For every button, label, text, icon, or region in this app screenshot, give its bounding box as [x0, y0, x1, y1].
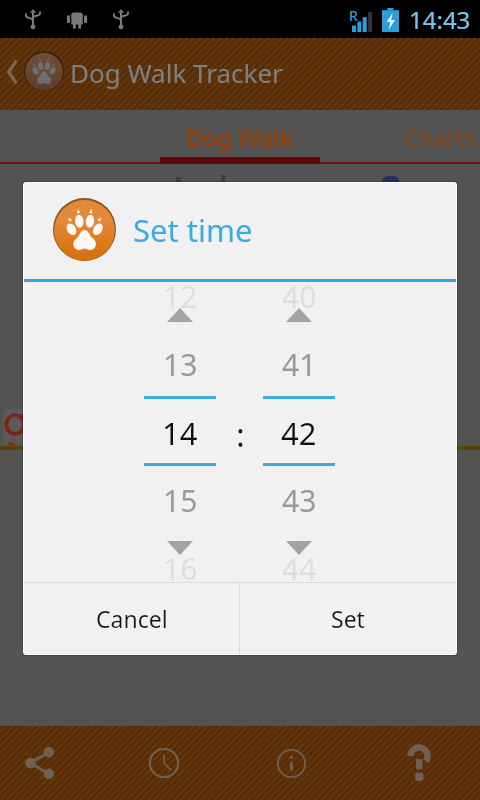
staticText: 16	[163, 548, 198, 589]
button[interactable]: Share	[10, 726, 70, 800]
button[interactable]: Set	[240, 583, 456, 654]
button[interactable]: History	[134, 726, 194, 800]
staticText: :	[236, 412, 245, 450]
staticText: 14:43	[409, 3, 471, 36]
staticText: Cancel	[96, 603, 168, 634]
staticText: 44	[282, 548, 317, 589]
staticText: Dog Walk	[186, 122, 295, 153]
staticText: 42	[281, 412, 317, 454]
staticText: 12	[163, 276, 198, 317]
button[interactable]: Charts	[360, 110, 480, 164]
staticText: R	[349, 6, 358, 25]
staticText: Dog Walk Tracker	[70, 55, 283, 90]
staticText: 14	[162, 412, 198, 454]
staticText: Set time	[133, 209, 253, 251]
staticText: Charts	[405, 122, 476, 153]
button[interactable]: Cancel	[24, 583, 239, 654]
staticText: 13	[163, 344, 198, 385]
staticText: 40	[282, 276, 317, 317]
button[interactable]: Info	[261, 726, 321, 800]
button[interactable]: Dog Walk	[160, 110, 320, 164]
staticText: 15	[163, 480, 198, 521]
staticText: Set	[331, 603, 365, 634]
staticText: 41	[282, 344, 317, 385]
button[interactable]: Help	[389, 726, 449, 800]
staticText: 43	[282, 480, 317, 521]
